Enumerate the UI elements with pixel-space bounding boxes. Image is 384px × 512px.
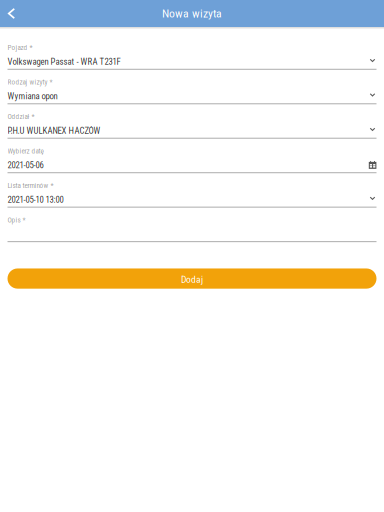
staticText: Wymiana opon (7, 91, 57, 101)
staticText: Dodaj (181, 274, 203, 285)
button[interactable]: Lista terminów * (0, 173, 384, 208)
staticText: Lista terminów * (7, 181, 53, 190)
staticText: Nowa wizyta (162, 7, 222, 20)
button[interactable]: Dodaj (7, 268, 376, 289)
staticText: P.H.U WULKANEX HACZÓW (7, 126, 100, 136)
staticText: Oddział * (7, 112, 34, 121)
button[interactable]: Opis * (0, 208, 384, 242)
button[interactable]: Back (4, 0, 19, 27)
staticText: Opis * (7, 216, 25, 224)
staticText: Wybierz datę (7, 147, 43, 155)
staticText: Rodzaj wizyty * (7, 78, 52, 86)
staticText: Volkswagen Passat - WRA T231F (7, 57, 120, 67)
button[interactable]: Wybierz datę (0, 139, 384, 173)
button[interactable]: Oddział * (0, 104, 384, 139)
staticText: Pojazd * (7, 43, 32, 52)
staticText: 2021-05-10 13:00 (7, 194, 63, 205)
button[interactable]: Pojazd * (0, 35, 384, 70)
button[interactable]: Rodzaj wizyty * (0, 70, 384, 104)
staticText: 2021-05-06 (7, 160, 43, 170)
